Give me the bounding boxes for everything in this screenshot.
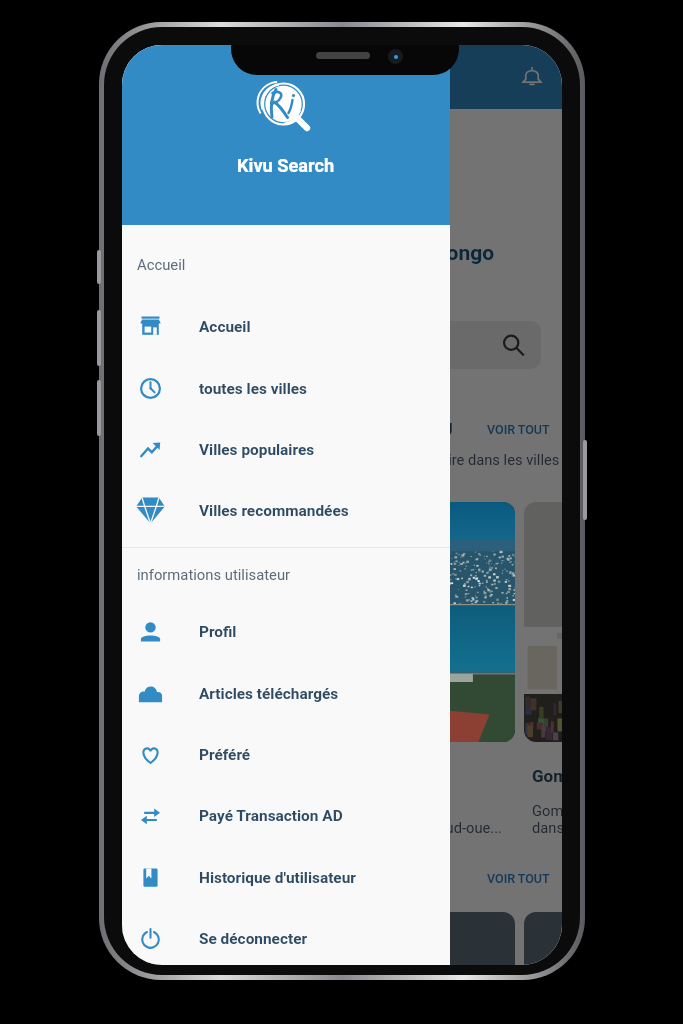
staticText: Kivu Search (237, 155, 335, 176)
staticText: toutes les villes (199, 380, 307, 398)
button[interactable]: Préféré (122, 724, 450, 785)
button[interactable]: Notifications (519, 64, 545, 90)
staticText: Se déconnecter (199, 930, 308, 948)
staticText: Villes populaires (199, 441, 315, 459)
button[interactable]: Se déconnecter (122, 908, 450, 965)
button[interactable]: Bukavu (332, 502, 515, 836)
staticText: Goma est une ville dans l'est du pays... (148, 802, 276, 836)
button[interactable]: Accueil (122, 296, 450, 357)
staticText: Historique d'utilisateur (199, 869, 356, 887)
button[interactable]: Villes recommandées (122, 480, 450, 541)
button[interactable]: Payé Transaction AD (122, 785, 450, 846)
staticText: Découvrez les villes de l'est du Congo (140, 241, 495, 266)
staticText: LES MEILLEURES VILLES DU NORD-KIVU (140, 419, 453, 439)
staticText: RECOMMANDE (140, 868, 258, 888)
staticText: Payé Transaction AD (199, 807, 343, 825)
button[interactable]: toutes les villes (122, 358, 450, 419)
staticText: Accueil (137, 256, 186, 273)
staticText: informations utilisateur (137, 566, 291, 583)
staticText: Accueil (199, 318, 251, 336)
button[interactable]: VOIR TOUT (487, 422, 550, 437)
button[interactable]: Historique d'utilisateur (122, 847, 450, 908)
button[interactable] (140, 321, 541, 369)
button[interactable]: Goma (524, 502, 562, 836)
staticText: Villes recommandées (199, 502, 349, 520)
staticText: Bukavu est une grande ville du sud-oue..… (340, 802, 502, 836)
staticText: Goma (532, 766, 562, 786)
staticText: Goma est une ville dans l'est du pays... (532, 802, 562, 836)
button[interactable]: Villes populaires (122, 419, 450, 480)
button[interactable]: Articles téléchargés (122, 663, 450, 724)
staticText: Préféré (199, 746, 251, 764)
button[interactable]: VOIR TOUT (487, 871, 550, 886)
button[interactable]: Goma (140, 502, 323, 836)
staticText: Articles téléchargés (199, 685, 339, 703)
staticText: Découvrez les meilleurs endroits tourist… (127, 451, 560, 468)
staticText: Profil (199, 623, 237, 641)
button[interactable]: Profil (122, 601, 450, 662)
